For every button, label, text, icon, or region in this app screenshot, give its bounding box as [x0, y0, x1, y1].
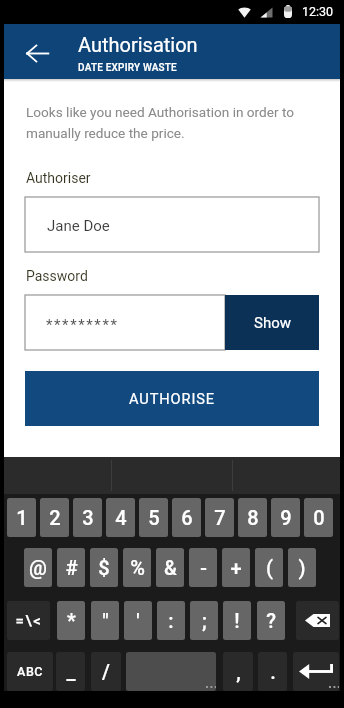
staticText: Authorisation — [78, 33, 198, 56]
staticText: ! — [234, 609, 240, 632]
staticText: Looks like you need Authorisation in ord… — [26, 104, 312, 142]
button[interactable]: ( — [255, 548, 283, 587]
button[interactable]: ) — [288, 548, 316, 587]
staticText: 12:30 — [302, 4, 334, 19]
button[interactable]: # — [57, 548, 85, 587]
staticText: * — [67, 609, 76, 632]
staticText: 2 — [49, 506, 61, 529]
staticText: + — [230, 556, 242, 579]
button[interactable]: ' — [124, 601, 152, 640]
button[interactable]: - — [189, 548, 217, 587]
staticText: ) — [298, 556, 306, 579]
staticText: 0 — [313, 506, 325, 529]
button[interactable]: Back — [25, 41, 50, 66]
staticText: 7 — [214, 506, 226, 529]
button[interactable]: . — [258, 652, 287, 691]
staticText: ********* — [46, 316, 119, 334]
staticText: : — [168, 609, 174, 632]
staticText: & — [164, 556, 177, 579]
button[interactable]: Enter — [293, 652, 339, 691]
button[interactable]: & — [156, 548, 184, 587]
button[interactable]: 0 — [304, 498, 333, 537]
button[interactable]: =\< — [7, 601, 50, 640]
staticText: " — [102, 609, 109, 632]
button[interactable]: $ — [90, 548, 118, 587]
button[interactable]: _ — [56, 652, 85, 691]
button[interactable]: 1 — [7, 498, 36, 537]
button[interactable]: 7 — [205, 498, 234, 537]
staticText: ABC — [17, 664, 43, 679]
button[interactable]: 6 — [172, 498, 201, 537]
staticText: Jane Doe — [47, 217, 110, 235]
button[interactable]: 9 — [271, 498, 300, 537]
button[interactable]: ; — [190, 601, 218, 640]
button[interactable]: , — [223, 652, 253, 691]
staticText: / — [102, 660, 110, 683]
button[interactable]: ! — [223, 601, 251, 640]
staticText: - — [200, 556, 207, 579]
staticText: 6 — [181, 506, 193, 529]
button[interactable]: Show — [225, 295, 319, 350]
staticText: ; — [202, 609, 207, 632]
staticText: AUTHORISE — [129, 390, 216, 407]
staticText: Password — [26, 268, 88, 284]
staticText: 8 — [247, 506, 259, 529]
button[interactable]: ABC — [7, 652, 53, 691]
staticText: @ — [29, 556, 47, 579]
button[interactable]: 3 — [73, 498, 102, 537]
staticText: 1 — [16, 506, 28, 529]
staticText: DATE EXPIRY WASTE — [78, 62, 177, 74]
button[interactable]: * — [57, 601, 85, 640]
staticText: Authoriser — [26, 170, 91, 186]
button[interactable]: ********* — [25, 295, 225, 350]
staticText: 3 — [82, 506, 94, 529]
button[interactable]: Backspace — [296, 601, 339, 640]
staticText: =\< — [15, 612, 43, 630]
button[interactable]: Jane Doe — [25, 197, 319, 252]
staticText: $ — [98, 556, 110, 579]
button[interactable]: Space — [126, 652, 216, 691]
staticText: 5 — [148, 506, 160, 529]
button[interactable]: : — [157, 601, 185, 640]
staticText: _ — [66, 660, 76, 683]
button[interactable]: AUTHORISE — [25, 371, 319, 426]
button[interactable]: 2 — [40, 498, 69, 537]
staticText: Show — [254, 314, 291, 332]
staticText: 4 — [115, 506, 127, 529]
button[interactable]: + — [222, 548, 250, 587]
staticText: # — [65, 556, 78, 579]
button[interactable]: / — [91, 652, 121, 691]
staticText: ? — [266, 609, 276, 632]
button[interactable]: ? — [257, 601, 285, 640]
button[interactable]: @ — [24, 548, 52, 587]
staticText: , — [236, 660, 241, 683]
button[interactable]: 8 — [238, 498, 267, 537]
staticText: ( — [266, 556, 273, 579]
button[interactable]: 4 — [106, 498, 135, 537]
staticText: . — [270, 660, 276, 683]
staticText: ' — [136, 609, 140, 632]
staticText: 9 — [280, 506, 292, 529]
button[interactable]: " — [91, 601, 119, 640]
staticText: % — [130, 556, 145, 579]
button[interactable]: % — [123, 548, 151, 587]
button[interactable]: 5 — [139, 498, 168, 537]
